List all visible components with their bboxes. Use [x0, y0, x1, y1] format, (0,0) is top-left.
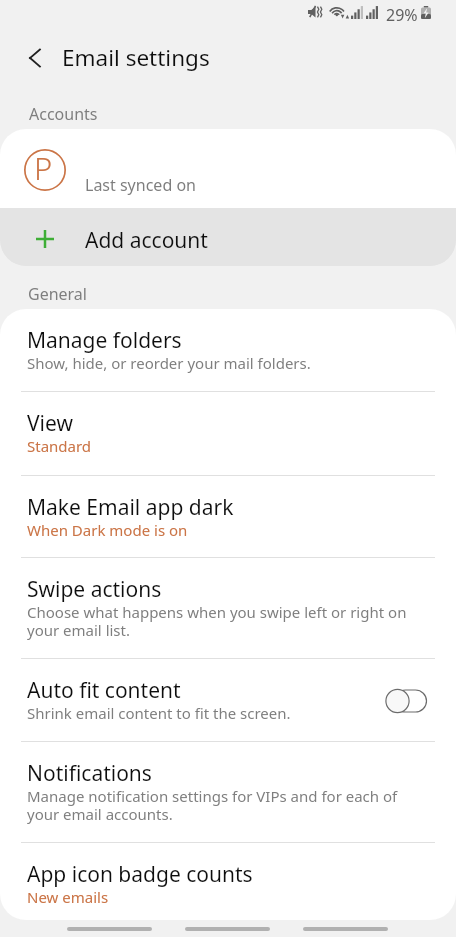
button[interactable]: View [0, 392, 456, 476]
other: Auto fit content toggle [391, 688, 429, 714]
staticText: Notifications [27, 759, 152, 788]
staticText: Shrink email content to fit the screen. [27, 703, 291, 723]
button[interactable]: Notifications [0, 742, 456, 843]
staticText: Auto fit content [27, 676, 181, 705]
staticText: Email settings [62, 42, 210, 73]
staticText: Choose what happens when you swipe left … [27, 602, 409, 640]
staticText: Accounts [29, 103, 98, 125]
staticText: Standard [27, 436, 92, 456]
staticText: 29% [386, 4, 418, 26]
staticText: Last synced on [85, 174, 196, 196]
button[interactable]: Auto fit content [0, 659, 456, 742]
staticText: When Dark mode is on [27, 520, 188, 540]
staticText: Manage notification settings for VIPs an… [27, 786, 409, 824]
button[interactable]: Navigate up [10, 34, 58, 82]
button[interactable]: Swipe actions [0, 558, 456, 659]
staticText: P [34, 147, 53, 189]
staticText: General [28, 283, 87, 305]
button[interactable]: Manage folders [0, 309, 456, 392]
staticText: Manage folders [27, 326, 182, 355]
staticText: Make Email app dark [27, 493, 234, 522]
staticText: Add account [85, 226, 208, 255]
staticText: View [27, 409, 73, 438]
button[interactable]: Make Email app dark [0, 476, 456, 558]
staticText: App icon badge counts [27, 860, 253, 889]
staticText: New emails [27, 887, 109, 907]
staticText: Show, hide, or reorder your mail folders… [27, 353, 311, 373]
button[interactable]: Add account [0, 208, 456, 266]
button[interactable]: App icon badge counts [0, 843, 456, 920]
staticText: Swipe actions [27, 575, 162, 604]
button[interactable]: P [0, 129, 456, 208]
